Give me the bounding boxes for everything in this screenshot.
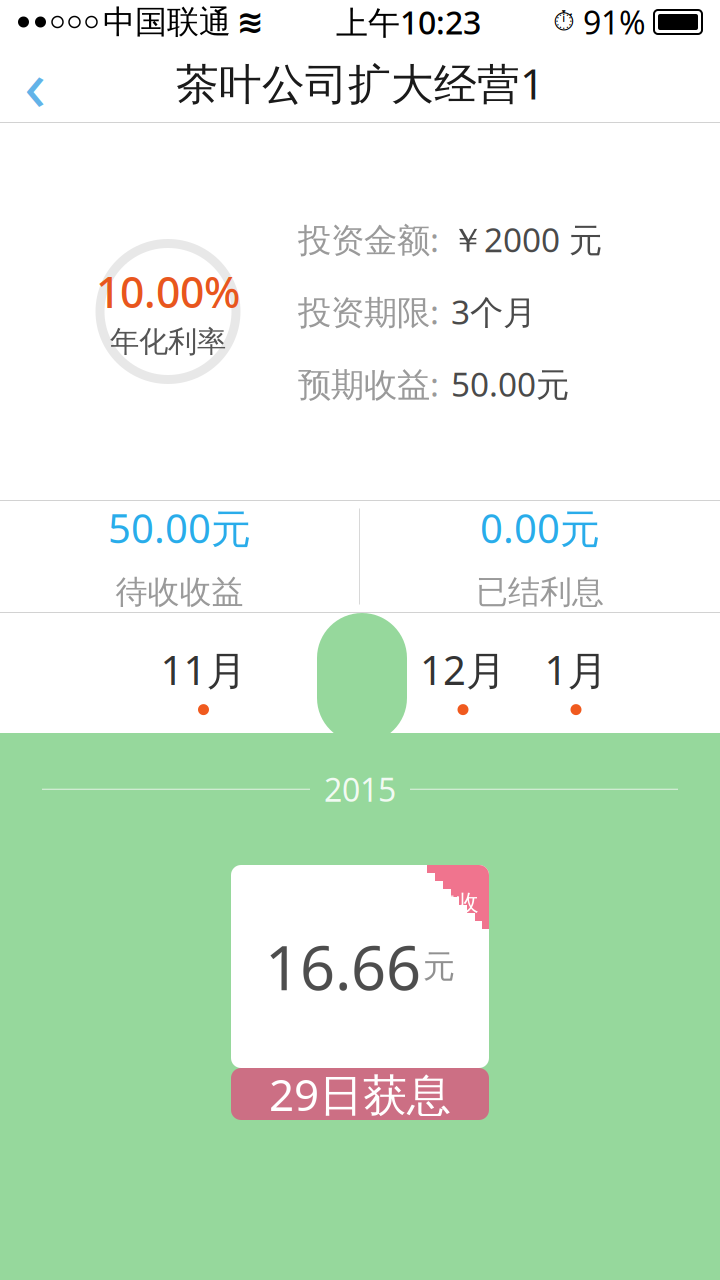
staticText: ‹: [24, 35, 46, 131]
button[interactable]: 50.00元: [0, 501, 359, 611]
staticText: 91%: [583, 1, 646, 43]
staticText: 已结利息: [476, 572, 604, 612]
staticText: 2015: [324, 768, 396, 810]
staticText: 待收: [433, 889, 479, 917]
button[interactable]: 1月: [519, 613, 633, 733]
staticText: 投资金额:: [298, 217, 439, 261]
staticText: ￥2000 元: [451, 217, 602, 261]
staticText: 年化利率: [110, 324, 226, 360]
staticText: 中国联通: [103, 2, 231, 42]
staticText: 0.00元: [480, 501, 600, 554]
staticText: 预期收益:: [298, 362, 439, 406]
staticText: 12月: [420, 643, 506, 696]
staticText: 上午10:23: [336, 1, 481, 43]
button[interactable]: 16.66: [231, 865, 489, 1120]
staticText: 茶叶公司扩大经营1: [176, 55, 544, 111]
staticText: 50.00元: [451, 362, 569, 406]
button[interactable]: 12月: [407, 613, 519, 733]
staticText: 1月: [544, 643, 607, 696]
button[interactable]: 11月: [0, 613, 407, 733]
button[interactable]: 0.00元: [360, 501, 720, 611]
staticText: 待收收益: [115, 572, 243, 612]
staticText: 50.00元: [108, 501, 251, 554]
button[interactable]: Back: [0, 44, 70, 122]
staticText: ⏱: [553, 8, 575, 36]
staticText: 元: [423, 947, 455, 986]
staticText: ≋: [237, 4, 264, 40]
staticText: 11月: [160, 643, 246, 696]
staticText: 3个月: [451, 289, 536, 334]
staticText: 16.66: [265, 926, 421, 1007]
staticText: 投资期限:: [298, 289, 439, 334]
staticText: 10.00%: [96, 263, 240, 320]
staticText: 29日获息: [269, 1065, 451, 1123]
